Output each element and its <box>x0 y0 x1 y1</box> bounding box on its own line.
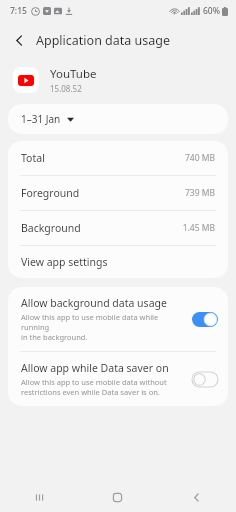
staticText: 1–31 Jan <box>21 112 61 126</box>
button[interactable]: Navigate up <box>6 27 32 53</box>
staticText: Background <box>21 221 81 235</box>
staticText: Application data usage <box>36 32 171 49</box>
staticText: Foreground <box>21 186 80 200</box>
staticText: Allow this app to use mobile data while … <box>21 312 186 342</box>
button[interactable]: Allow background data usage <box>8 287 228 351</box>
button[interactable]: View app settings <box>8 246 228 278</box>
staticText: 15.08.52 <box>50 83 82 94</box>
staticText: Allow background data usage <box>21 296 167 310</box>
staticText: 739 MB <box>184 187 215 199</box>
staticText: 740 MB <box>184 152 215 164</box>
button[interactable]: Recents <box>0 482 78 512</box>
staticText: View app settings <box>21 255 108 269</box>
button[interactable]: Foreground <box>8 176 228 210</box>
button[interactable]: Allow app while Data saver on <box>8 352 228 406</box>
button[interactable]: Back <box>157 482 236 512</box>
button[interactable]: Background <box>8 211 228 245</box>
staticText: 1.45 MB <box>182 222 215 234</box>
staticText: Total <box>21 151 45 165</box>
staticText: Allow app while Data saver on <box>21 361 169 375</box>
staticText: YouTube <box>50 66 97 82</box>
staticText: Allow this app to use mobile data withou… <box>21 377 167 397</box>
button[interactable]: Total <box>8 141 228 175</box>
button[interactable]: 1–31 Jan <box>8 104 228 134</box>
button[interactable]: Toggle on <box>192 312 218 327</box>
staticText: 7:15 <box>10 5 27 17</box>
button[interactable]: Toggle off <box>192 372 218 387</box>
button[interactable]: Home <box>78 482 157 512</box>
staticText: 60% <box>203 5 220 17</box>
